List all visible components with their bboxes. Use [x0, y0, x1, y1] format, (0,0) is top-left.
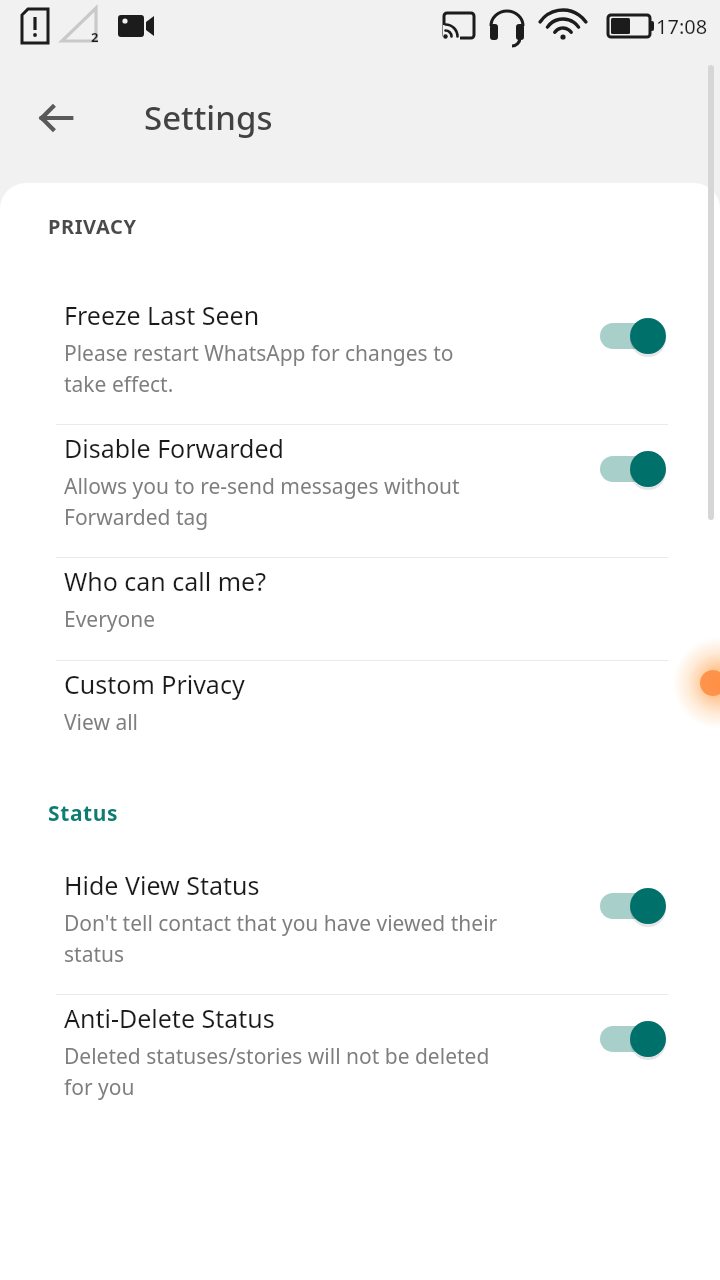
staticText: Status — [48, 799, 119, 828]
button[interactable]: Hide View Status — [0, 862, 720, 994]
button[interactable]: Custom Privacy — [0, 661, 720, 763]
button[interactable]: Toggle on — [600, 316, 664, 356]
staticText: Disable Forwarded — [64, 431, 284, 465]
staticText: Allows you to re-send messages without F… — [64, 472, 460, 531]
staticText: PRIVACY — [48, 213, 137, 240]
button[interactable]: Who can call me? — [0, 558, 720, 660]
staticText: Hide View Status — [64, 868, 260, 902]
staticText: View all — [64, 708, 139, 737]
staticText: Everyone — [64, 605, 156, 634]
staticText: Deleted statuses/stories will not be del… — [64, 1042, 490, 1101]
button[interactable]: Toggle on — [600, 1019, 664, 1059]
staticText: 2 — [91, 28, 99, 46]
staticText: Don't tell contact that you have viewed … — [64, 909, 498, 968]
staticText: Freeze Last Seen — [64, 298, 260, 332]
staticText: Who can call me? — [64, 564, 267, 598]
button[interactable]: Disable Forwarded — [0, 425, 720, 557]
button[interactable]: Toggle on — [600, 449, 664, 489]
button[interactable]: Toggle on — [600, 886, 664, 926]
staticText: Settings — [144, 95, 273, 140]
staticText: Anti-Delete Status — [64, 1001, 275, 1035]
staticText: Custom Privacy — [64, 667, 245, 701]
button[interactable]: Back — [24, 86, 88, 150]
button[interactable]: Freeze Last Seen — [0, 292, 720, 424]
staticText: Please restart WhatsApp for changes to t… — [64, 339, 454, 398]
staticText: 17:08 — [656, 13, 708, 40]
button[interactable]: Anti-Delete Status — [0, 995, 720, 1127]
